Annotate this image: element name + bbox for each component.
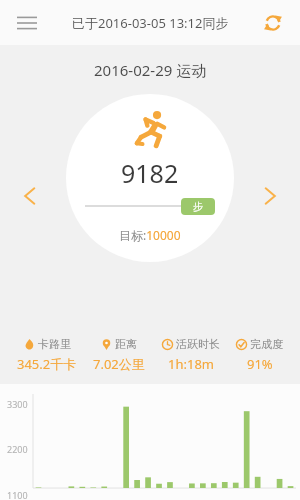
button[interactable]: Sync (256, 6, 290, 40)
staticText: 1h:18m (168, 355, 214, 373)
button[interactable]: Previous day (12, 178, 48, 214)
staticText: 2200 (7, 443, 28, 455)
staticText: 完成度 (250, 337, 283, 351)
staticText: 活跃时长 (176, 337, 220, 351)
button[interactable]: 活跃时长 (162, 337, 220, 373)
staticText: 91% (247, 355, 273, 373)
staticText: 2016-02-29 运动 (94, 60, 207, 80)
staticText: 距离 (115, 337, 137, 351)
staticText: 目标:10000 (119, 227, 181, 243)
button[interactable]: Menu (8, 4, 46, 42)
button[interactable]: 距离 (93, 337, 145, 373)
button[interactable]: 卡路里 (17, 337, 77, 373)
staticText: 7.02公里 (93, 355, 145, 373)
button[interactable]: 9182 (66, 94, 234, 262)
button[interactable]: Next day (252, 178, 288, 214)
staticText: 卡路里 (38, 337, 71, 351)
staticText: 已于2016-03-05 13:12同步 (72, 14, 229, 32)
staticText: 345.2千卡 (17, 355, 77, 373)
staticText: 3300 (7, 398, 28, 410)
staticText: 9182 (121, 156, 179, 190)
button[interactable]: 完成度 (236, 337, 283, 373)
staticText: 1100 (7, 489, 28, 500)
staticText: 步 (193, 200, 203, 213)
